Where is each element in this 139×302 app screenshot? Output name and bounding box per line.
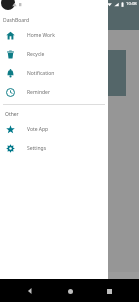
button[interactable]: Reminder bbox=[0, 83, 108, 102]
button[interactable]: Home Work bbox=[0, 26, 108, 45]
staticText: DashBoard bbox=[3, 17, 30, 24]
button[interactable]: Recycle bbox=[0, 45, 108, 64]
staticText: Other bbox=[5, 111, 19, 118]
staticText: Home Work bbox=[27, 32, 55, 39]
staticText: Reminder bbox=[27, 89, 50, 96]
staticText: Notification bbox=[27, 70, 55, 77]
button[interactable]: Home bbox=[61, 282, 79, 300]
button[interactable]: Settings bbox=[0, 139, 108, 158]
button[interactable]: Notification bbox=[0, 64, 108, 83]
staticText: Vote App bbox=[27, 126, 49, 133]
button[interactable]: Recent apps bbox=[100, 282, 118, 300]
button[interactable]: Back bbox=[21, 282, 39, 300]
staticText: Recycle bbox=[27, 51, 45, 58]
staticText: Settings bbox=[27, 145, 47, 152]
button[interactable]: Vote App bbox=[0, 120, 108, 139]
staticText: 10:08 bbox=[126, 1, 137, 7]
